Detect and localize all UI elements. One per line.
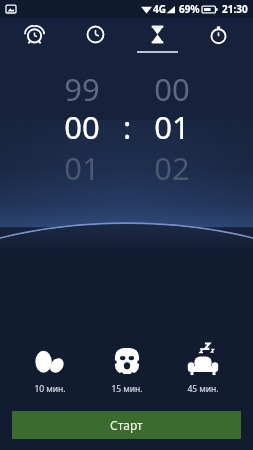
button[interactable]: 01 <box>0 147 253 180</box>
button[interactable]: 00 <box>0 106 253 139</box>
staticText: Старт <box>110 417 143 433</box>
staticText: 99 <box>64 68 100 101</box>
staticText: 45 мин. <box>187 383 219 395</box>
staticText: 01 <box>64 147 100 180</box>
staticText: 21:30 <box>222 2 248 16</box>
button[interactable]: 99 <box>0 68 253 101</box>
button[interactable]: Timer <box>130 18 185 56</box>
button[interactable]: Старт <box>12 411 241 439</box>
button[interactable]: World clock <box>68 18 123 56</box>
staticText: 01 <box>154 106 190 139</box>
staticText: 00 <box>64 106 100 139</box>
staticText: 69% <box>179 2 200 16</box>
button[interactable]: Alarm <box>7 18 62 56</box>
staticText: 00 <box>154 68 190 101</box>
staticText: 4G <box>153 2 166 16</box>
button[interactable]: Face mask 15 minutes <box>93 340 161 397</box>
staticText: 02 <box>154 147 190 180</box>
staticText: 15 мин. <box>111 383 143 395</box>
button[interactable]: Egg timer 10 minutes <box>16 340 84 397</box>
staticText: 10 мин. <box>34 383 66 395</box>
button[interactable]: Nap 45 minutes <box>169 340 237 397</box>
button[interactable]: Stopwatch <box>191 18 246 56</box>
staticText: : <box>123 106 132 139</box>
